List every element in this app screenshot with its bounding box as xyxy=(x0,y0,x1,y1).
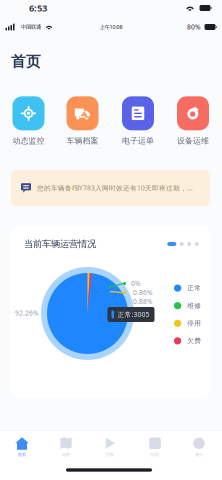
staticText: 控制 xyxy=(106,452,114,457)
staticText: 车辆档案 xyxy=(66,136,98,146)
staticText: 报表 xyxy=(151,452,159,457)
staticText: 动态监控 xyxy=(12,136,44,146)
button[interactable]: 控制 xyxy=(88,435,132,459)
staticText: 0.86% xyxy=(133,288,153,297)
staticText: 电子运单 xyxy=(122,136,154,146)
staticText: 地图 xyxy=(62,452,70,457)
staticText: 首页 xyxy=(11,52,41,70)
staticText: 92.26% xyxy=(15,309,39,317)
button[interactable]: 首页 xyxy=(0,435,44,459)
staticText: 中国联通 xyxy=(21,24,41,30)
staticText: 首页 xyxy=(18,452,26,457)
staticText: 维修 xyxy=(187,302,201,310)
staticText: 欠费 xyxy=(187,337,201,345)
button[interactable]: 您的车辆鲁FBY783入网时效还有10天即将过期，... xyxy=(11,170,210,206)
button[interactable]: 报表 xyxy=(133,435,177,459)
staticText: 0.88% xyxy=(133,297,153,306)
staticText: 停用 xyxy=(187,319,201,327)
staticText: 正常 xyxy=(187,284,201,292)
staticText: 80% xyxy=(187,23,201,31)
staticText: 正常:3005 xyxy=(118,310,150,319)
button[interactable]: 车辆档案 xyxy=(58,94,106,148)
button[interactable]: 设备运维 xyxy=(169,94,217,148)
staticText: 设备运维 xyxy=(177,136,209,146)
staticText: 上午10:08 xyxy=(99,23,122,31)
staticText: 6:53 xyxy=(29,2,47,14)
staticText: 0% xyxy=(131,279,141,288)
button[interactable]: 电子运单 xyxy=(114,94,162,148)
staticText: 我的 xyxy=(195,452,203,457)
staticText: 您的车辆鲁FBY783入网时效还有10天即将过期，... xyxy=(37,184,193,192)
button[interactable]: 我的 xyxy=(177,435,221,459)
button[interactable]: 地图 xyxy=(44,435,88,459)
staticText: 当前车辆运营情况 xyxy=(24,238,96,250)
button[interactable]: 动态监控 xyxy=(4,94,52,148)
